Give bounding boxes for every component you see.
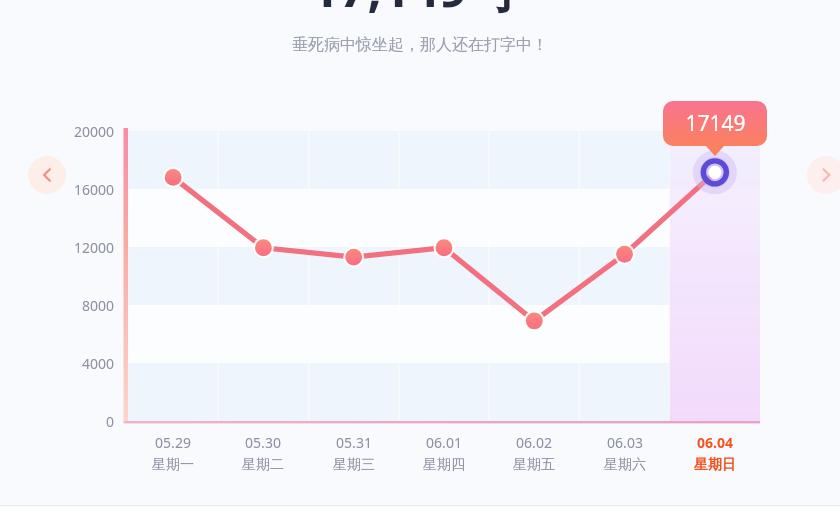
staticText: 05.29 [155, 433, 191, 452]
staticText: 星期五 [513, 456, 555, 474]
button[interactable]: 06.03 [580, 433, 670, 474]
staticText: 17149 [685, 109, 746, 138]
button[interactable]: 05.30 [218, 433, 308, 474]
staticText: 06.02 [516, 433, 552, 452]
staticText: 20000 [73, 122, 114, 141]
staticText: 16000 [73, 180, 114, 199]
staticText: 星期六 [604, 456, 646, 474]
staticText: 星期二 [242, 456, 284, 474]
staticText: 17,149 字 [310, 0, 531, 22]
staticText: 06.04 [697, 433, 733, 452]
button[interactable]: Next week [807, 156, 840, 194]
staticText: 星期三 [333, 456, 375, 474]
button[interactable]: 05.29 [128, 433, 218, 474]
staticText: 星期四 [423, 456, 465, 474]
staticText: 05.30 [245, 433, 281, 452]
staticText: 06.03 [607, 433, 643, 452]
button[interactable]: 06.04 [670, 433, 760, 474]
staticText: 12000 [73, 238, 114, 257]
staticText: 4000 [81, 354, 114, 373]
button[interactable]: 17149 [663, 101, 767, 146]
staticText: 8000 [81, 296, 114, 315]
staticText: 0 [105, 412, 114, 431]
staticText: 05.31 [336, 433, 372, 452]
staticText: 星期日 [694, 456, 736, 474]
staticText: 06.01 [426, 433, 462, 452]
button[interactable]: 05.31 [309, 433, 399, 474]
button[interactable]: 06.01 [399, 433, 489, 474]
staticText: 星期一 [152, 456, 194, 474]
button[interactable]: 06.02 [489, 433, 579, 474]
staticText: 垂死病中惊坐起，那人还在打字中！ [292, 35, 548, 55]
button[interactable]: Previous week [28, 156, 66, 194]
